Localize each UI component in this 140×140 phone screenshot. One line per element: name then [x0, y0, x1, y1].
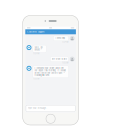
- staticText: 10:24 AM: [62, 41, 68, 43]
- staticText: I need help: [55, 37, 65, 39]
- staticText: 10:25 AM: [62, 62, 68, 64]
- staticText: I checked your order and it left our dep…: [34, 67, 65, 76]
- staticText: 10:24 AM: [33, 53, 39, 55]
- staticText: Type your message…: [28, 107, 48, 109]
- button[interactable]: Type your message…: [25, 104, 76, 112]
- staticText: Customer Support: [27, 30, 45, 33]
- staticText: Sure, go ahead: [34, 46, 42, 51]
- button[interactable]: Home: [25, 112, 76, 125]
- staticText: My order is late: [52, 58, 67, 60]
- staticText: 10:26 AM: [33, 78, 39, 80]
